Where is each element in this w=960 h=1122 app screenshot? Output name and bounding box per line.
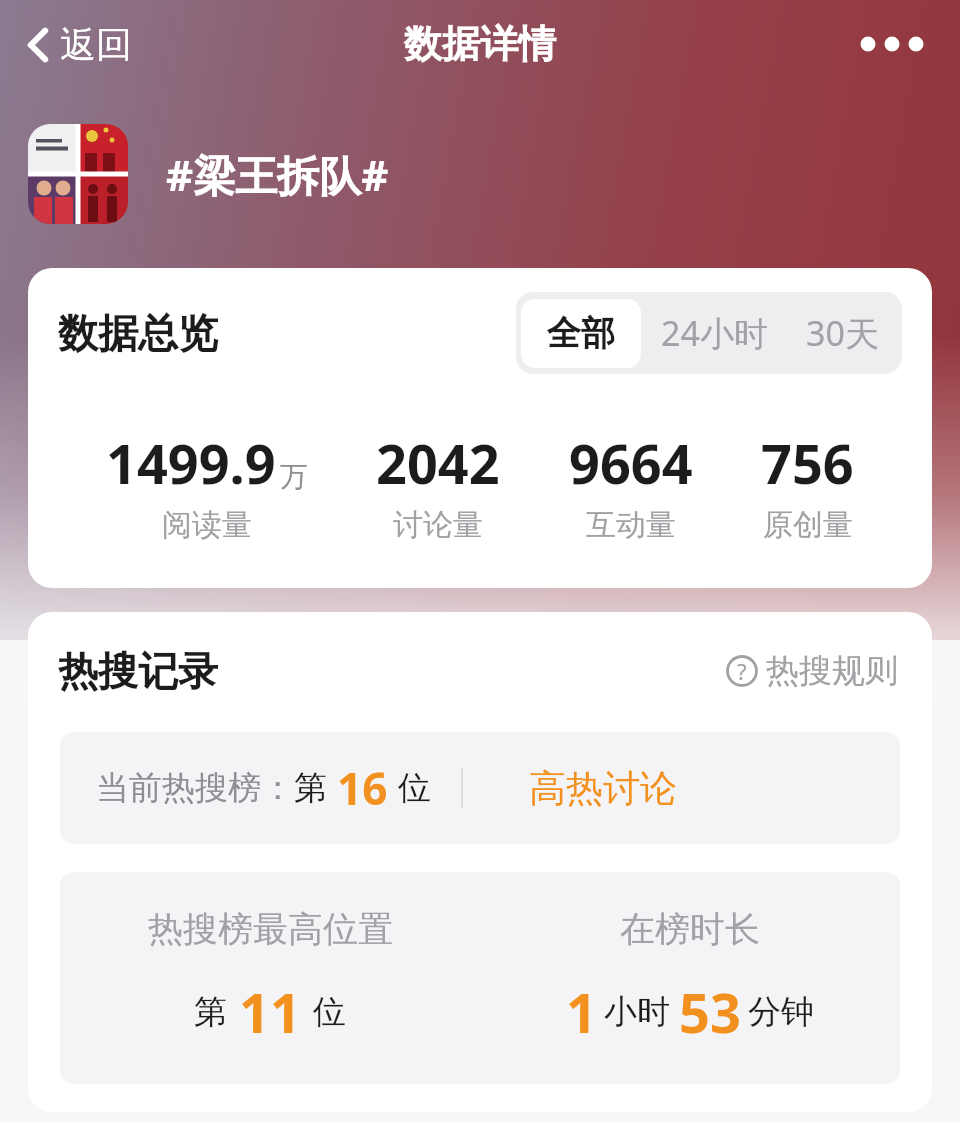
staticText: 高热讨论 [529, 765, 677, 812]
button[interactable]: ? [722, 646, 902, 696]
staticText: 原创量 [763, 506, 853, 544]
button[interactable]: 全部 [521, 299, 641, 368]
staticText: 小时 [604, 991, 670, 1033]
staticText: 1499.9 [106, 426, 276, 500]
staticText: 讨论量 [393, 506, 483, 544]
staticText: 返回 [60, 22, 132, 67]
staticText: ? [737, 656, 747, 686]
staticText: 数据总览 [58, 308, 218, 358]
staticText: 11 [239, 975, 301, 1049]
staticText: 阅读量 [162, 506, 252, 544]
button[interactable]: Topic avatar [28, 124, 128, 224]
staticText: 热搜榜最高位置 [148, 907, 393, 951]
button[interactable]: More options [854, 16, 930, 72]
button[interactable]: 24小时 [641, 297, 788, 369]
staticText: 分钟 [748, 991, 814, 1033]
staticText: 数据详情 [404, 20, 556, 68]
staticText: 第 [294, 767, 327, 809]
staticText: 万 [280, 459, 308, 494]
staticText: 16 [337, 758, 388, 818]
staticText: 9664 [569, 426, 693, 500]
staticText: #梁王拆队# [166, 146, 389, 203]
staticText: 在榜时长 [620, 907, 760, 951]
staticText: 1 [566, 975, 597, 1049]
button[interactable]: 返回 [16, 14, 142, 75]
staticText: 当前热搜榜： [96, 767, 294, 809]
staticText: 24小时 [661, 310, 768, 356]
staticText: 热搜规则 [766, 650, 898, 692]
staticText: 位 [398, 767, 431, 809]
button[interactable]: 当前热搜榜： [60, 732, 900, 844]
staticText: 位 [313, 991, 346, 1033]
staticText: 互动量 [586, 506, 676, 544]
button[interactable]: 30天 [788, 297, 897, 369]
staticText: 2042 [376, 426, 500, 500]
staticText: 第 [194, 991, 227, 1033]
staticText: 全部 [547, 312, 615, 355]
staticText: 53 [679, 975, 741, 1049]
staticText: 热搜记录 [58, 646, 218, 696]
staticText: 756 [761, 426, 854, 500]
staticText: 30天 [806, 310, 879, 356]
